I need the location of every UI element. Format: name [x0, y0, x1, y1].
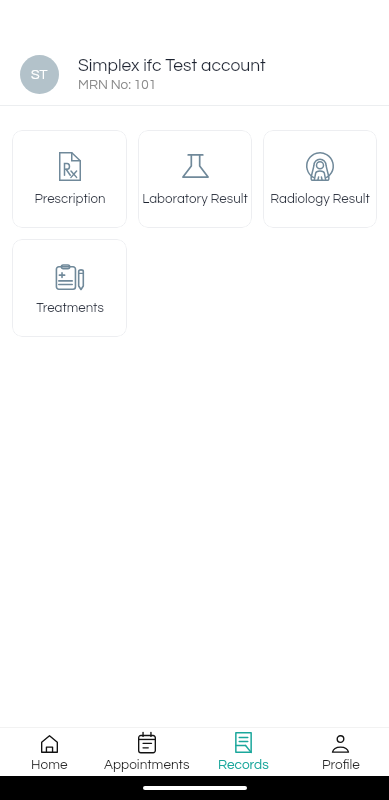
button[interactable]: Appointments — [98, 728, 195, 772]
other: Profile — [332, 735, 349, 753]
staticText: MRN No: 101 — [78, 78, 157, 92]
staticText: Prescription — [34, 192, 106, 206]
staticText: Simplex ifc Test account — [78, 57, 266, 75]
staticText: ST — [31, 68, 48, 82]
button[interactable]: Prescription — [12, 130, 127, 228]
staticText: Home — [31, 758, 68, 772]
other: Home — [41, 735, 58, 753]
button[interactable]: Radiology Result — [263, 130, 377, 228]
staticText: Radiology Result — [270, 192, 370, 206]
staticText: Appointments — [104, 758, 190, 772]
button[interactable]: Laboratory Result — [138, 130, 252, 228]
staticText: Records — [218, 758, 269, 772]
button[interactable]: Treatments — [12, 239, 127, 337]
button[interactable]: Profile — [292, 728, 389, 772]
staticText: Profile — [322, 758, 360, 772]
other: Appointments — [138, 732, 156, 753]
button[interactable]: Records — [195, 728, 292, 772]
staticText: Treatments — [36, 301, 104, 315]
button[interactable]: Home — [0, 728, 98, 772]
staticText: Laboratory Result — [142, 192, 248, 206]
other: Records — [235, 732, 252, 753]
